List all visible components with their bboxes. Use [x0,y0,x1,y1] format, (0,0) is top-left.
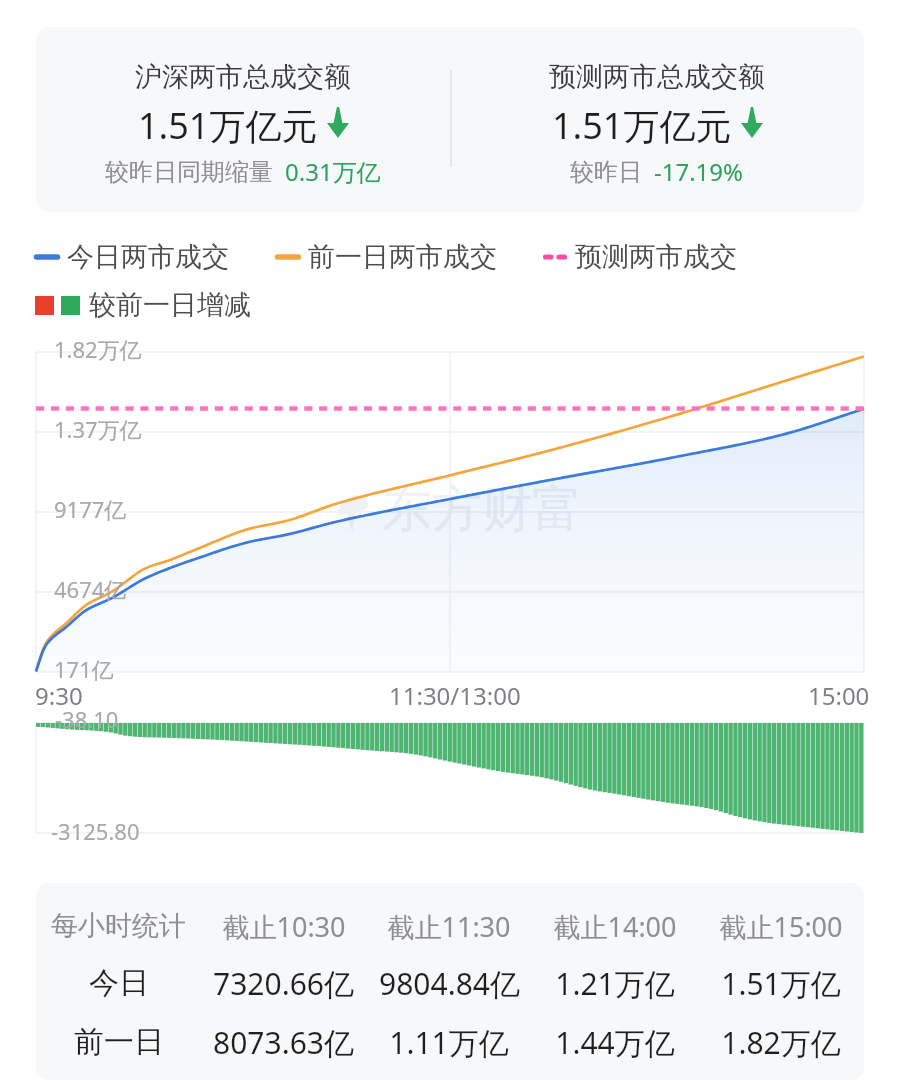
staticText: -38.10 [55,704,119,734]
staticText: 15:00 [808,679,870,712]
staticText: 截止10:30 [222,908,346,945]
button[interactable]: 较前一日增减 [35,288,251,322]
button[interactable]: 两市成交额走势图 [36,352,864,672]
staticText: 今日 [89,964,149,1002]
staticText: 预测两市总成交额 [549,60,765,94]
staticText: 截止14:00 [553,908,677,945]
staticText: 1.82万亿 [721,1022,841,1063]
staticText: 7320.66亿 [213,963,354,1004]
staticText: 较前一日增减 [89,288,251,322]
staticText: 1.44万亿 [555,1022,675,1063]
staticText: 1.51万亿元 [552,101,732,150]
staticText: 前一日两市成交 [308,240,497,274]
staticText: -3125.80 [51,816,140,846]
staticText: 1.37万亿 [54,414,142,444]
staticText: 1.11万亿 [389,1022,509,1063]
staticText: 1.21万亿 [555,963,675,1004]
button[interactable]: 预测两市成交 [543,240,737,274]
staticText: 11:30/13:00 [389,679,521,712]
button[interactable]: 沪深两市总成交额 [36,27,864,212]
staticText: 今日两市成交 [67,240,229,274]
staticText: 8073.63亿 [213,1022,354,1063]
staticText: 1.82万亿 [54,334,142,364]
staticText: 截止15:00 [719,908,843,945]
staticText: 1.51万亿元 [138,101,318,150]
button[interactable]: 今日两市成交 [35,240,229,274]
staticText: 9177亿 [54,494,127,524]
staticText: -17.19% [654,155,744,188]
button[interactable]: 前一日两市成交 [276,240,497,274]
staticText: 0.31万亿 [285,155,381,188]
staticText: 4674亿 [54,574,127,604]
button[interactable]: 每小时统计 [36,883,864,1080]
staticText: 9:30 [35,679,83,712]
staticText: 171亿 [54,654,114,684]
staticText: 沪深两市总成交额 [135,60,351,94]
staticText: 较昨日 [570,157,642,187]
staticText: 预测两市成交 [575,240,737,274]
staticText: 截止11:30 [387,908,511,945]
button[interactable]: 较前一日增减柱状图 [36,723,864,833]
staticText: 东方财富 [382,478,582,541]
staticText: 较昨日同期缩量 [105,157,273,187]
staticText: 9804.84亿 [379,963,520,1004]
staticText: 1.51万亿 [721,963,841,1004]
staticText: 每小时统计 [51,909,186,943]
staticText: 前一日 [74,1023,164,1061]
